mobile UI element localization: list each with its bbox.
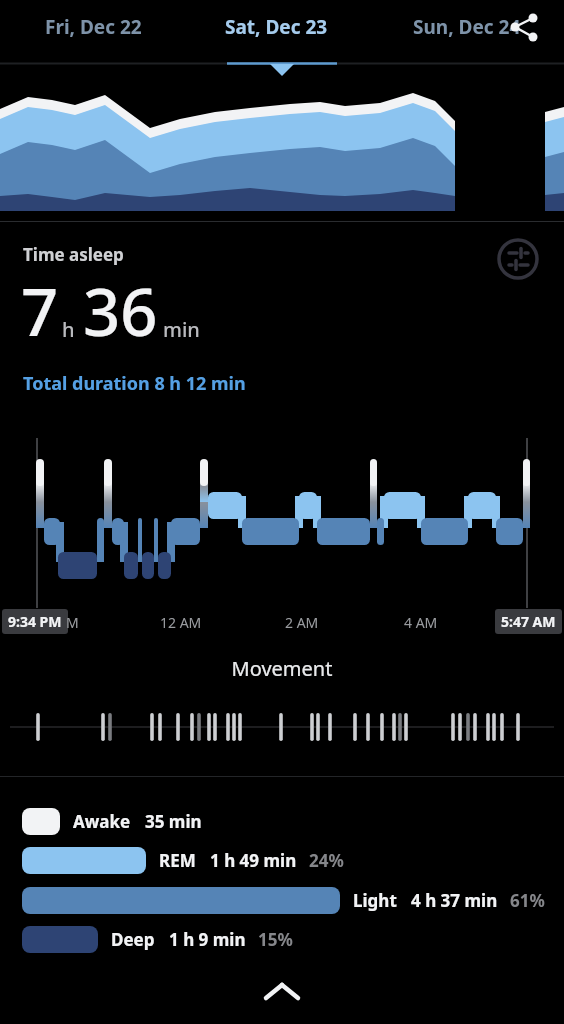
staticText: min: [163, 316, 200, 343]
staticText: Sun, Dec 24: [413, 14, 521, 40]
staticText: M: [66, 613, 79, 632]
staticText: Deep: [111, 928, 155, 951]
staticText: 12 AM: [160, 613, 202, 632]
staticText: 4 h 37 min: [411, 889, 498, 912]
staticText: Movement: [0, 655, 564, 682]
staticText: 1 h 9 min: [169, 928, 246, 951]
staticText: Total duration 8 h 12 min: [23, 371, 246, 396]
staticText: 4 AM: [404, 613, 438, 632]
staticText: Awake: [73, 810, 131, 833]
staticText: Fri, Dec 22: [45, 14, 142, 40]
staticText: 35 min: [145, 810, 202, 833]
staticText: Time asleep: [23, 243, 124, 266]
staticText: 15%: [258, 928, 293, 951]
staticText: 5:47 AM: [501, 612, 556, 631]
staticText: h: [62, 316, 75, 343]
staticText: 24%: [309, 849, 344, 872]
staticText: Light: [353, 889, 397, 912]
staticText: 7: [21, 267, 59, 356]
staticText: REM: [159, 849, 196, 872]
staticText: 9:34 PM: [8, 612, 62, 631]
staticText: 2 AM: [285, 613, 319, 632]
staticText: Sat, Dec 23: [225, 14, 328, 40]
staticText: 1 h 49 min: [210, 849, 297, 872]
staticText: 36: [83, 267, 158, 356]
staticText: 61%: [510, 889, 545, 912]
